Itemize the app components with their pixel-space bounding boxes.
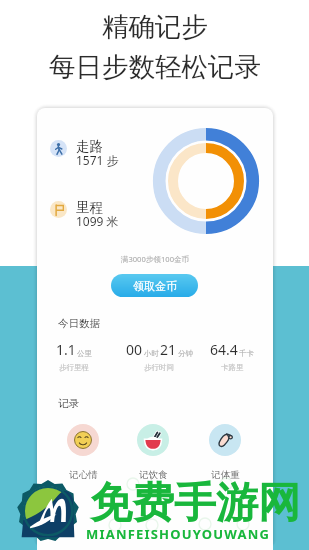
button[interactable]: Record weight (197, 424, 253, 481)
staticText: 1099 米 (76, 213, 119, 229)
staticText: 小时 (144, 349, 159, 358)
button[interactable]: Record diet (125, 424, 181, 481)
staticText: 走路 (76, 138, 103, 155)
staticText: 千卡 (239, 349, 254, 358)
staticText: 00 (126, 340, 143, 359)
staticText: 64.4 (210, 340, 238, 359)
staticText: 领取金币 (133, 279, 177, 293)
staticText: 精确记步 (102, 10, 208, 43)
staticText: 记心情 (69, 469, 98, 481)
staticText: 里程 (76, 199, 103, 216)
staticText: 免费手游网 (90, 477, 300, 530)
staticText: 记录 (58, 397, 79, 410)
staticText: 分钟 (178, 349, 193, 358)
staticText: 卡路里 (221, 363, 244, 372)
staticText: 1571 步 (76, 152, 119, 168)
staticText: 满3000步领100金币 (37, 254, 273, 264)
button[interactable]: 领取金币 (111, 274, 198, 297)
button[interactable]: Record mood (55, 424, 111, 481)
staticText: MIANFEISHOUYOUWANG (86, 525, 271, 543)
staticText: 每日步数轻松记录 (49, 50, 261, 83)
other: Logo (17, 480, 79, 542)
staticText: 步行里程 (59, 363, 89, 372)
staticText: 记饮食 (139, 469, 168, 481)
staticText: 公里 (77, 349, 92, 358)
other: Record mood (74, 431, 92, 449)
staticText: 记体重 (211, 469, 240, 481)
staticText: 21 (160, 340, 177, 359)
other: Record diet (143, 430, 163, 450)
staticText: 步行时间 (144, 363, 174, 372)
staticText: 1.1 (56, 340, 76, 359)
other: Record weight (215, 430, 235, 450)
staticText: 今日数据 (58, 317, 100, 330)
